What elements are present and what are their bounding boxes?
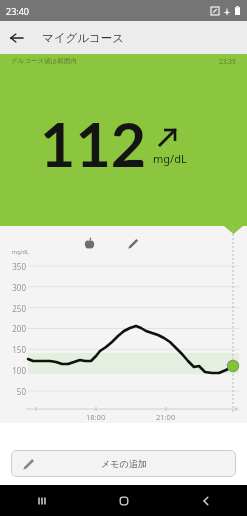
button[interactable]: メモの追加 xyxy=(11,450,236,477)
staticText: 50 xyxy=(16,386,26,397)
staticText: 23:39 xyxy=(219,57,236,66)
staticText: 200 xyxy=(12,323,26,334)
staticText: マイグルコース xyxy=(42,31,125,45)
staticText: グルコース値は範囲内 xyxy=(11,57,77,65)
staticText: 350 xyxy=(12,261,26,272)
staticText: 100 xyxy=(12,365,26,376)
button[interactable]: Back xyxy=(165,485,247,516)
staticText: 18:00 xyxy=(86,412,106,422)
button[interactable]: Recent apps xyxy=(0,485,83,516)
staticText: mg/dL xyxy=(12,248,29,255)
button[interactable]: Home xyxy=(83,485,165,516)
button[interactable]: Notes xyxy=(123,233,143,253)
staticText: 21:00 xyxy=(156,412,176,422)
staticText: メモの追加 xyxy=(101,458,147,469)
staticText: 112 xyxy=(40,107,147,180)
staticText: 250 xyxy=(12,303,26,314)
staticText: mg/dL xyxy=(153,151,187,166)
button[interactable]: Back xyxy=(0,21,33,54)
staticText: 150 xyxy=(12,344,26,355)
staticText: 23:40 xyxy=(6,5,30,17)
staticText: 300 xyxy=(12,282,26,293)
button[interactable]: Food log xyxy=(79,233,99,253)
